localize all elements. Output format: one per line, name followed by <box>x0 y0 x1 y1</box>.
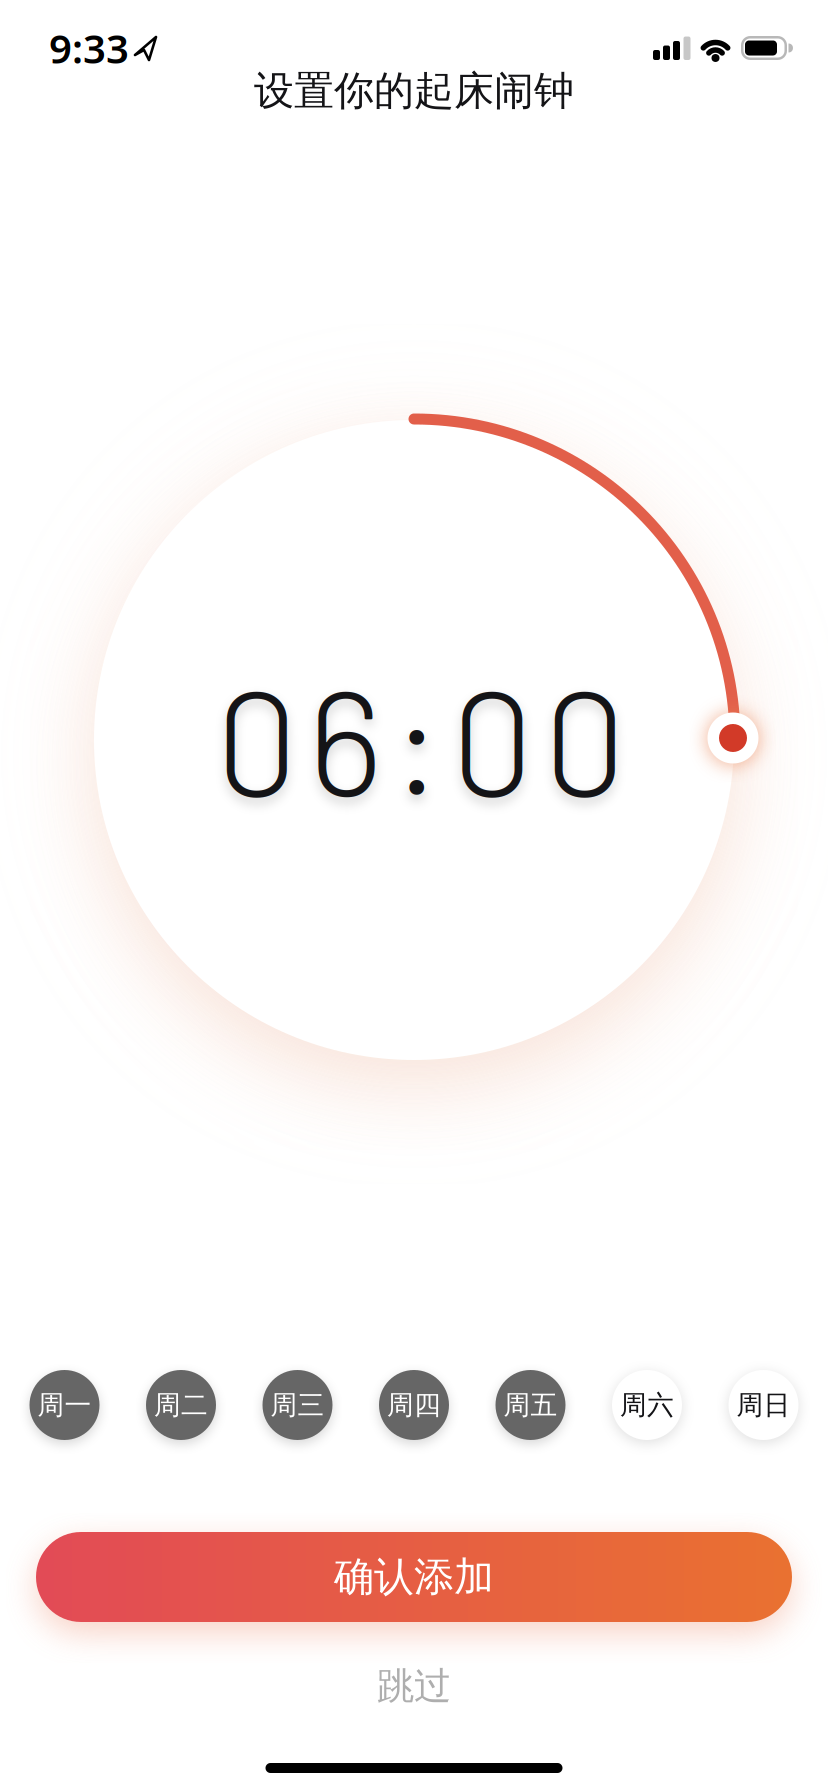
staticText: 06:00 <box>215 650 626 826</box>
button[interactable]: 周一 <box>29 1370 99 1440</box>
staticText: 周五 <box>503 1389 557 1421</box>
staticText: 周六 <box>620 1389 674 1421</box>
staticText: 周日 <box>736 1389 790 1421</box>
staticText: 设置你的起床闹钟 <box>254 66 574 115</box>
staticText: 周三 <box>270 1389 324 1421</box>
button[interactable]: 周六 <box>612 1370 682 1440</box>
staticText: 确认添加 <box>334 1552 494 1601</box>
button[interactable] <box>707 712 758 763</box>
button[interactable]: 周四 <box>379 1370 449 1440</box>
staticText: 周四 <box>387 1389 441 1421</box>
button[interactable]: 周二 <box>146 1370 216 1440</box>
staticText: 周二 <box>154 1389 208 1421</box>
staticText: 跳过 <box>377 1663 451 1709</box>
staticText: 周一 <box>37 1389 91 1421</box>
button[interactable]: 确认添加 <box>36 1532 792 1622</box>
button[interactable]: 周日 <box>728 1370 798 1440</box>
button[interactable]: 跳过 <box>377 1663 451 1709</box>
button[interactable]: 周五 <box>495 1370 565 1440</box>
button[interactable]: 周三 <box>262 1370 332 1440</box>
staticText: 9:33 <box>49 21 129 74</box>
